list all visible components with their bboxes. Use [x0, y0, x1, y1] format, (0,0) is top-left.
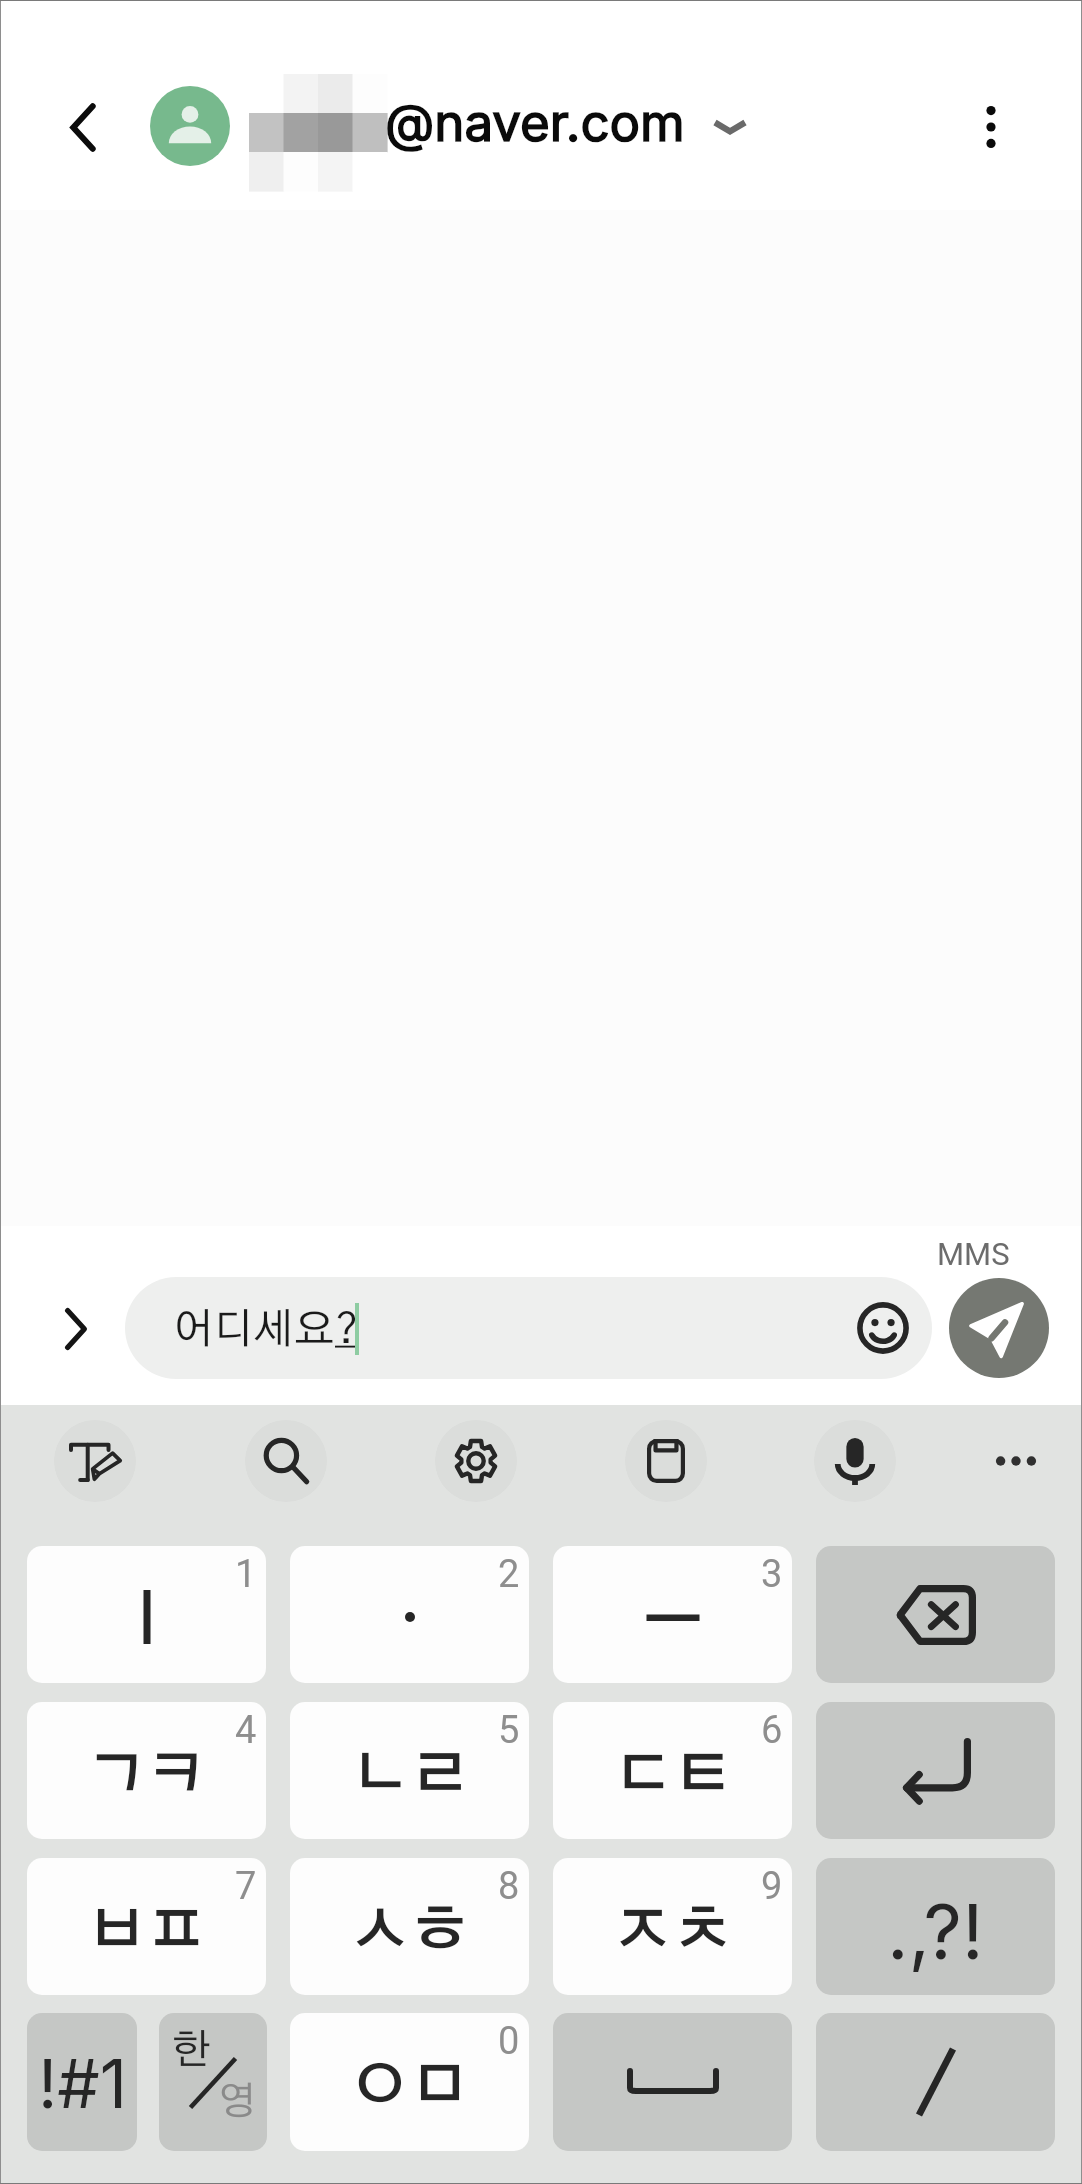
button[interactable]: 6: [553, 1702, 792, 1839]
staticText: !#1: [38, 2043, 127, 2124]
button[interactable]: 4: [27, 1702, 266, 1839]
staticText: 3: [761, 1552, 783, 1597]
button[interactable]: Slash: [816, 2013, 1055, 2151]
staticText: 8: [498, 1864, 520, 1909]
button[interactable]: Switch Korean English: [159, 2013, 267, 2151]
button[interactable]: ·: [290, 1546, 529, 1683]
staticText: 영: [218, 2083, 256, 2122]
staticText: ㅈㅊ: [613, 1902, 733, 1962]
staticText: 한: [172, 2030, 212, 2071]
staticText: ?: [335, 1309, 359, 1351]
button[interactable]: Handwriting: [54, 1420, 136, 1502]
staticText: 어디세요: [173, 1309, 335, 1351]
staticText: 0: [498, 2019, 520, 2064]
button[interactable]: Insert emoji: [841, 1286, 925, 1370]
staticText: ㄱㅋ: [87, 1746, 207, 1806]
staticText: 1: [235, 1552, 257, 1597]
button[interactable]: 9: [553, 1858, 792, 1995]
staticText: 2: [498, 1552, 520, 1597]
staticText: ㅇㅁ: [350, 2057, 470, 2117]
button[interactable]: Keyboard settings: [435, 1420, 517, 1502]
button[interactable]: Enter: [816, 1702, 1055, 1839]
button[interactable]: Show recipients: [682, 79, 778, 175]
button[interactable]: Send message: [949, 1278, 1049, 1378]
button[interactable]: More keyboard options: [975, 1420, 1057, 1502]
staticText: 9: [761, 1864, 783, 1909]
button[interactable]: 0: [290, 2013, 529, 2151]
staticText: ㄷㅌ: [613, 1746, 733, 1806]
staticText: .,?!: [887, 1886, 984, 1977]
staticText: @naver.com: [385, 92, 685, 154]
staticText: ㅅㅎ: [350, 1902, 470, 1962]
button[interactable]: Delete: [816, 1546, 1055, 1683]
staticText: ㄴㄹ: [350, 1746, 470, 1806]
button[interactable]: 8: [290, 1858, 529, 1995]
button[interactable]: Contact photo: [150, 86, 230, 166]
button[interactable]: Punctuation: [816, 1858, 1055, 1995]
button[interactable]: Search: [245, 1420, 327, 1502]
staticText: 4: [235, 1708, 257, 1753]
button[interactable]: Voice input: [814, 1420, 896, 1502]
button[interactable]: 7: [27, 1858, 266, 1995]
staticText: 5: [498, 1708, 520, 1753]
staticText: MMS: [937, 1236, 1010, 1272]
button[interactable]: 5: [290, 1702, 529, 1839]
button[interactable]: ㅡ: [553, 1546, 792, 1683]
button[interactable]: Symbols: [27, 2013, 137, 2151]
button[interactable]: Show more options: [28, 1281, 124, 1377]
button[interactable]: ㅣ: [27, 1546, 266, 1683]
button[interactable]: 어디세요: [125, 1277, 932, 1379]
staticText: ㅂㅍ: [87, 1902, 207, 1962]
button[interactable]: Clipboard: [625, 1420, 707, 1502]
staticText: 6: [761, 1708, 783, 1753]
button[interactable]: Space: [553, 2013, 792, 2151]
button[interactable]: Navigate up: [35, 79, 131, 175]
staticText: 7: [235, 1864, 257, 1909]
button[interactable]: @naver.com: [250, 56, 690, 172]
button[interactable]: More options: [943, 79, 1039, 175]
